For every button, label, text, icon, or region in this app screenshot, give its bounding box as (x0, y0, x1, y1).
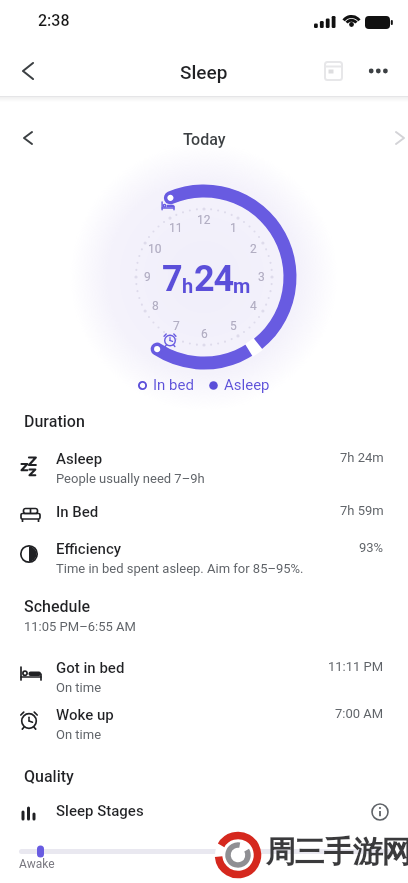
staticText: 11:11 PM (328, 659, 384, 674)
staticText: Today (183, 130, 226, 149)
staticText: On time (56, 727, 102, 742)
staticText: 24 (194, 258, 233, 300)
staticText: Sleep (180, 61, 228, 83)
staticText: 4 (250, 299, 257, 313)
staticText: Sleep Stages (56, 802, 144, 820)
staticText: In bed (153, 376, 194, 394)
button[interactable]: Sleep Stages (0, 799, 408, 832)
staticText: 8 (152, 299, 159, 313)
button[interactable]: Efficiency (0, 537, 408, 583)
staticText: People usually need 7–9h (56, 471, 205, 486)
staticText: 6 (201, 327, 208, 341)
staticText: 周三手游网 (266, 833, 408, 871)
staticText: 12 (197, 213, 211, 227)
staticText: Awake (19, 857, 55, 871)
staticText: 11:05 PM–6:55 AM (24, 619, 136, 634)
staticText: 2 (250, 242, 257, 256)
staticText: On time (56, 680, 102, 695)
button[interactable]: Woke up (0, 703, 408, 749)
staticText: Woke up (56, 706, 114, 724)
staticText: Asleep (224, 376, 270, 394)
staticText: Schedule (24, 597, 91, 616)
staticText: 1 (230, 221, 237, 235)
staticText: 7 (173, 319, 180, 333)
staticText: 7h 24m (340, 450, 384, 465)
button[interactable]: Got in bed (0, 656, 408, 702)
staticText: h (182, 274, 194, 297)
staticText: Efficiency (56, 540, 122, 558)
staticText: Asleep (56, 450, 103, 468)
button[interactable] (364, 796, 396, 828)
staticText: 11 (169, 221, 183, 235)
button[interactable] (8, 118, 48, 158)
staticText: 7h 59m (340, 503, 384, 518)
staticText: Time in bed spent asleep. Aim for 85–95%… (56, 561, 304, 576)
staticText: m (233, 274, 251, 297)
staticText: 3 (258, 270, 265, 284)
staticText: 93% (359, 540, 384, 555)
staticText: 5 (230, 319, 237, 333)
staticText: In Bed (56, 503, 99, 521)
staticText: Got in bed (56, 659, 125, 677)
staticText: 10 (148, 242, 162, 256)
button[interactable]: Asleep (0, 447, 408, 493)
button[interactable]: In Bed (0, 500, 408, 533)
staticText: 7:00 AM (335, 706, 384, 721)
button[interactable] (382, 118, 408, 144)
button[interactable] (318, 55, 348, 85)
staticText: Duration (24, 412, 85, 431)
button[interactable] (366, 56, 396, 86)
staticText: 2:38 (38, 11, 70, 30)
button[interactable] (6, 49, 50, 93)
staticText: 9 (144, 270, 151, 284)
staticText: 7 (162, 258, 182, 300)
staticText: Quality (24, 767, 74, 786)
